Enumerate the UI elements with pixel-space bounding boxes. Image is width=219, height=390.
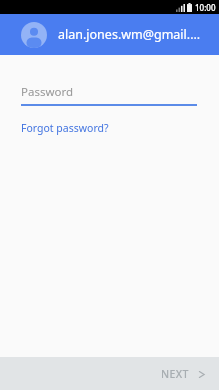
staticText: 10:00 (195, 2, 216, 13)
staticText: alan.jones.wm@gmail.... (58, 26, 201, 43)
other: Next (198, 371, 205, 378)
button[interactable]: NEXT (145, 361, 219, 387)
button[interactable]: Forgot password? (21, 121, 109, 135)
button[interactable]: Password (0, 84, 219, 106)
button[interactable]: alan.jones.wm@gmail.... (0, 14, 219, 55)
staticText: Forgot password? (21, 121, 109, 135)
staticText: NEXT (161, 367, 189, 381)
staticText: Password (21, 84, 74, 100)
